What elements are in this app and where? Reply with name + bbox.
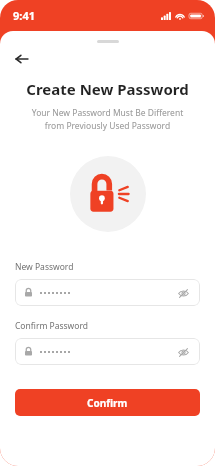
button[interactable]: Back xyxy=(9,46,35,72)
button[interactable]: Show password xyxy=(15,279,200,306)
staticText: Confirm Password xyxy=(15,320,88,332)
staticText: Create New Password xyxy=(0,79,215,99)
button[interactable]: Confirm xyxy=(15,389,200,416)
staticText: New Password xyxy=(15,261,74,273)
staticText: Your New Password Must Be Different from… xyxy=(20,107,195,132)
button[interactable]: Show password xyxy=(175,344,191,360)
staticText: Confirm xyxy=(87,396,128,410)
button[interactable]: Show password xyxy=(175,285,191,301)
button[interactable]: Show password xyxy=(15,338,200,365)
staticText: 9:41 xyxy=(13,8,35,23)
